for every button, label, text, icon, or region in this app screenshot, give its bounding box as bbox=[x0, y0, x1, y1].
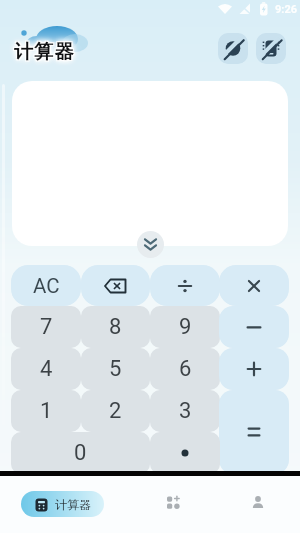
button[interactable] bbox=[81, 265, 150, 306]
button[interactable] bbox=[219, 348, 289, 390]
staticText: 计算器 bbox=[15, 39, 76, 63]
button[interactable] bbox=[150, 265, 220, 306]
button[interactable]: 7 bbox=[11, 306, 81, 348]
button[interactable]: 8 bbox=[81, 306, 150, 348]
button[interactable] bbox=[219, 265, 289, 306]
button[interactable] bbox=[242, 486, 274, 518]
staticText: 计算器 bbox=[55, 497, 91, 512]
button[interactable]: 2 bbox=[81, 390, 150, 432]
staticText: 4 bbox=[40, 356, 53, 382]
staticText: 9 bbox=[179, 314, 192, 340]
button[interactable] bbox=[150, 432, 220, 474]
button[interactable] bbox=[157, 486, 189, 518]
staticText: 5 bbox=[109, 356, 122, 382]
staticText: 计算器 bbox=[13, 39, 74, 63]
button[interactable]: 1 bbox=[11, 390, 81, 432]
staticText: AC bbox=[33, 274, 60, 298]
staticText: 1 bbox=[40, 398, 53, 424]
button[interactable]: 计算器 bbox=[21, 491, 104, 517]
staticText: 3 bbox=[179, 398, 192, 424]
button[interactable]: AC bbox=[11, 265, 81, 306]
button[interactable]: 6 bbox=[150, 348, 220, 390]
button[interactable]: 3 bbox=[150, 390, 220, 432]
staticText: 计算器 bbox=[13, 41, 74, 65]
button[interactable] bbox=[219, 306, 289, 348]
staticText: 9:26 bbox=[275, 3, 298, 16]
button[interactable]: 4 bbox=[11, 348, 81, 390]
staticText: 计算器 bbox=[15, 41, 76, 65]
staticText: 0 bbox=[74, 440, 87, 466]
staticText: 2 bbox=[109, 398, 122, 424]
button[interactable] bbox=[137, 231, 164, 258]
button[interactable]: 5 bbox=[81, 348, 150, 390]
staticText: 计算器 bbox=[14, 40, 75, 64]
button[interactable] bbox=[256, 33, 286, 64]
staticText: 6 bbox=[179, 356, 192, 382]
button[interactable] bbox=[219, 390, 289, 474]
button[interactable]: 9 bbox=[150, 306, 220, 348]
staticText: 8 bbox=[109, 314, 122, 340]
staticText: 7 bbox=[40, 314, 53, 340]
button[interactable] bbox=[218, 33, 248, 64]
button[interactable]: 0 bbox=[11, 432, 150, 474]
